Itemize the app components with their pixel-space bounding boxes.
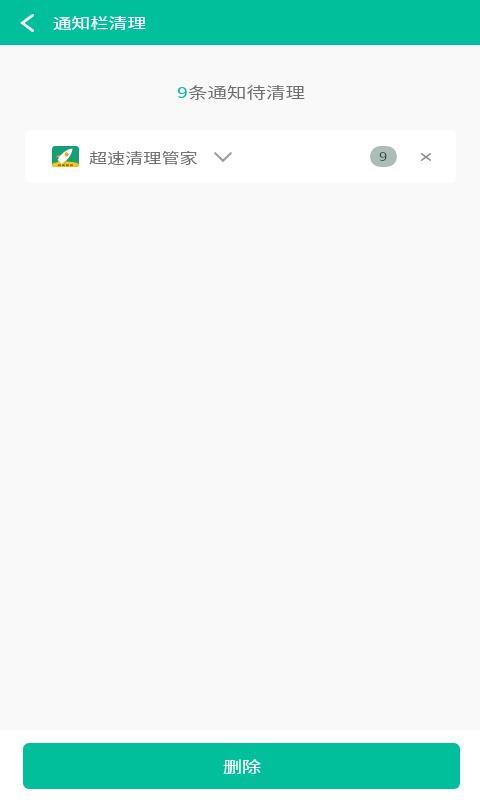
staticText: 超速清理管家 xyxy=(89,147,198,167)
button[interactable]: Expand xyxy=(208,143,238,171)
button[interactable]: Close xyxy=(413,144,439,170)
button[interactable]: Back xyxy=(0,0,46,45)
staticText: 9条通知待清理 xyxy=(1,80,480,102)
staticText: 9 xyxy=(379,148,388,164)
staticText: 删除 xyxy=(223,755,262,777)
staticText: 通知栏清理 xyxy=(53,11,146,32)
button[interactable]: 超速清理管家 xyxy=(25,130,456,183)
button[interactable]: 删除 xyxy=(23,743,460,789)
